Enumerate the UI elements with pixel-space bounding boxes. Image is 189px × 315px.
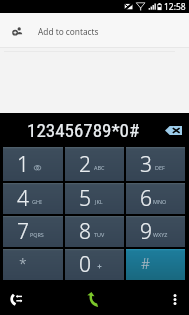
staticText: PQRS — [30, 231, 44, 238]
button[interactable]: 6 — [126, 183, 185, 214]
staticText: 8 — [79, 217, 91, 246]
button[interactable]: Add to contacts — [0, 13, 189, 47]
staticText: * — [19, 254, 27, 273]
button[interactable]: 5 — [65, 183, 124, 214]
staticText: 0 — [79, 250, 91, 279]
button[interactable]: 2 — [65, 147, 124, 181]
staticText: 9 — [140, 217, 152, 246]
button[interactable]: 4 — [3, 183, 63, 214]
button[interactable]: 7 — [3, 216, 63, 247]
button[interactable]: 3 — [126, 147, 185, 181]
button[interactable]: Call log — [3, 286, 27, 310]
staticText: ABC — [94, 164, 105, 171]
button[interactable]: 1 — [3, 147, 63, 181]
staticText: GHI — [32, 198, 42, 205]
staticText: 3 — [140, 150, 152, 179]
button[interactable]: Backspace — [158, 113, 189, 147]
staticText: 7 — [17, 217, 29, 246]
staticText: 123456789*0# — [27, 119, 140, 141]
button[interactable]: 8 — [65, 216, 124, 247]
staticText: 5 — [79, 184, 91, 213]
staticText: 1 — [17, 150, 29, 179]
button[interactable]: # — [126, 249, 185, 280]
staticText: 6 — [140, 184, 152, 213]
staticText: # — [141, 254, 151, 273]
staticText: TUV — [94, 231, 105, 238]
staticText: MNO — [153, 198, 167, 205]
staticText: 2 — [79, 150, 91, 179]
staticText: JKL — [95, 198, 103, 205]
staticText: 12:58 — [164, 1, 186, 13]
button[interactable]: 9 — [126, 216, 185, 247]
button[interactable]: More options — [163, 286, 187, 310]
button[interactable]: * — [3, 249, 63, 280]
button[interactable]: Dial — [80, 285, 106, 311]
staticText: 4 — [17, 184, 29, 213]
staticText: WXYZ — [153, 231, 168, 238]
button[interactable]: 0 — [65, 249, 124, 280]
staticText: Add to contacts — [38, 26, 99, 37]
staticText: DEF — [155, 164, 165, 171]
